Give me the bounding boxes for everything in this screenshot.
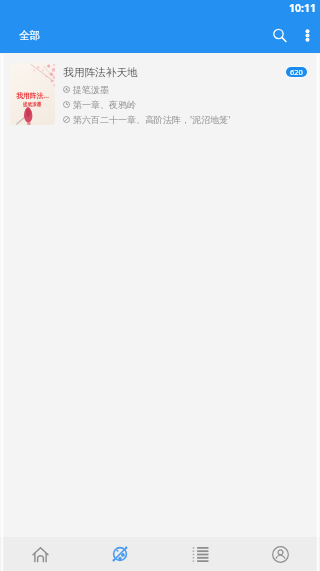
staticText: 我用阵法补天地 bbox=[63, 66, 138, 79]
staticText: 全部 bbox=[19, 29, 40, 42]
staticText: 620 bbox=[290, 67, 303, 77]
staticText: 10:11 bbox=[289, 1, 316, 15]
button[interactable]: Bookshelf bbox=[160, 537, 240, 571]
button[interactable]: More options bbox=[294, 22, 320, 48]
button[interactable]: Profile bbox=[240, 537, 320, 571]
button[interactable]: Search bbox=[264, 21, 294, 49]
staticText: 提笔泼墨 bbox=[23, 102, 42, 108]
staticText: 我用阵法… bbox=[16, 91, 49, 100]
button[interactable]: 我用阵法… bbox=[0, 53, 320, 125]
button[interactable]: Home bbox=[0, 537, 80, 571]
button[interactable]: Explore bbox=[80, 537, 160, 571]
staticText: 第六百二十一章、高阶法阵，'泥沼地笼' bbox=[73, 113, 231, 125]
staticText: 第一章、夜鸦岭 bbox=[73, 99, 136, 110]
staticText: 提笔泼墨 bbox=[73, 84, 109, 95]
